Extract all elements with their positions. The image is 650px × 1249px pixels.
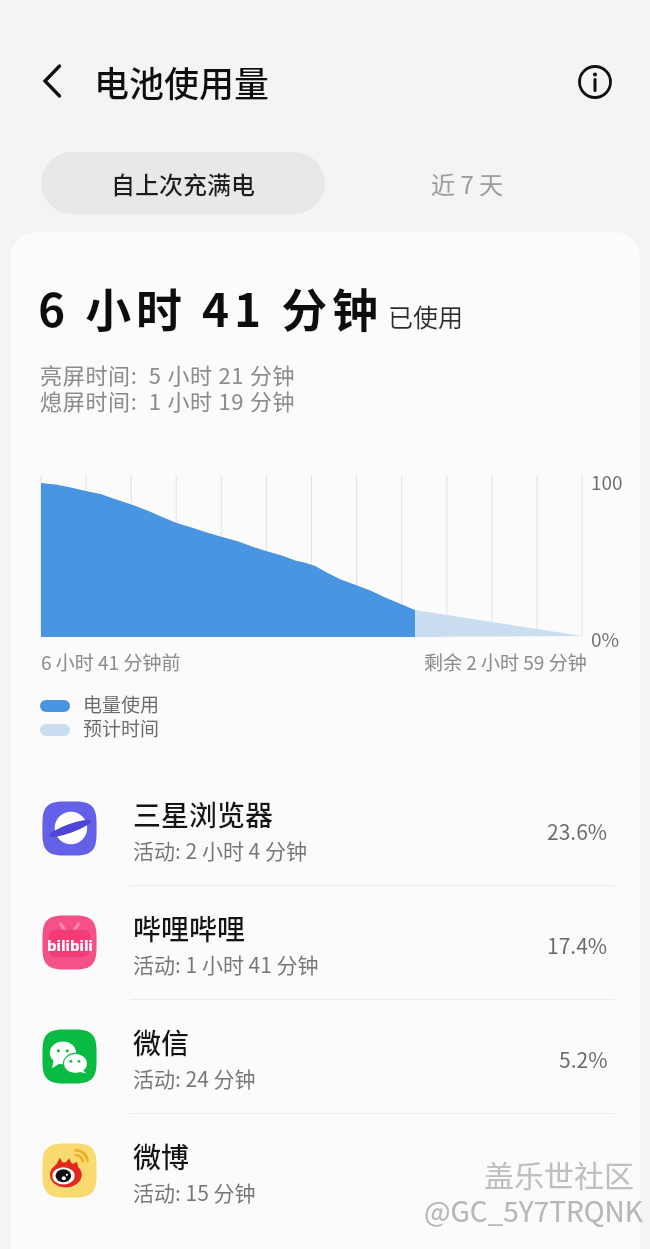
staticText: 电量使用	[83, 690, 160, 718]
staticText: 5.2%	[559, 1044, 608, 1074]
button[interactable]: 自上次充满电	[41, 152, 325, 214]
staticText: 盖乐世社区	[484, 1152, 634, 1195]
staticText: @GC_5Y7TRQNK	[424, 1190, 643, 1231]
staticText: 剩余 2 小时 59 分钟	[424, 648, 587, 676]
button[interactable]: 微博	[0, 1113, 650, 1227]
staticText: 自上次充满电	[111, 166, 255, 201]
button[interactable]: 近 7 天	[355, 152, 579, 214]
staticText: 哔哩哔哩	[133, 908, 246, 949]
staticText: 微信	[133, 1022, 190, 1063]
button[interactable]: 三星浏览器	[0, 771, 650, 885]
staticText: 已使用	[388, 298, 464, 334]
staticText: bilibili	[47, 935, 93, 955]
button[interactable]: 微信	[0, 999, 650, 1113]
staticText: 微博	[133, 1136, 190, 1177]
staticText: 17.4%	[547, 930, 608, 960]
button[interactable]: bilibili	[0, 885, 650, 999]
staticText: 活动: 2 小时 4 分钟	[133, 835, 307, 865]
staticText: 活动: 24 分钟	[133, 1063, 256, 1093]
staticText: 电池使用量	[94, 56, 270, 107]
staticText: 亮屏时间: 5 小时 21 分钟	[40, 358, 296, 390]
button[interactable]: Back	[23, 52, 81, 110]
staticText: 预计时间	[83, 714, 160, 742]
staticText: 0%	[591, 625, 620, 653]
staticText: 活动: 1 小时 41 分钟	[133, 949, 319, 979]
staticText: 熄屏时间: 1 小时 19 分钟	[40, 384, 296, 416]
staticText: 6 小时 41 分钟前	[41, 648, 181, 676]
staticText: 6 小时 41 分钟	[38, 274, 383, 341]
staticText: 三星浏览器	[133, 794, 274, 835]
staticText: 23.6%	[547, 816, 608, 846]
staticText: 活动: 15 分钟	[133, 1177, 256, 1207]
button[interactable]: Information	[570, 57, 620, 107]
staticText: 100	[591, 468, 623, 496]
staticText: 近 7 天	[431, 166, 504, 201]
